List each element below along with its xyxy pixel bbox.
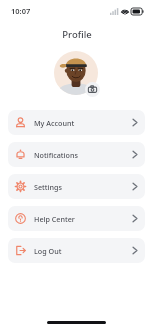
button[interactable]: Log Out [8,238,145,263]
button[interactable]: Help Center [8,206,145,231]
button[interactable]: Settings [8,174,145,199]
button[interactable]: Change profile photo [54,51,100,97]
staticText: Profile [62,28,92,41]
staticText: Notifications [34,150,78,160]
staticText: My Account [34,118,75,128]
button[interactable]: My Account [8,110,145,135]
staticText: Help Center [34,214,75,224]
button[interactable]: Notifications [8,142,145,167]
staticText: 10:07 [11,6,31,16]
staticText: Log Out [34,246,62,256]
staticText: Settings [34,182,62,192]
